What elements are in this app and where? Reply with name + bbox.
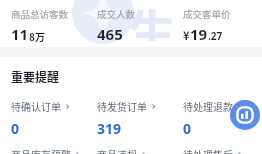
button[interactable]: 11 xyxy=(11,24,45,44)
button[interactable]: 319 xyxy=(97,119,122,138)
staticText: 8万 xyxy=(29,29,45,43)
staticText: .27 xyxy=(208,29,223,43)
button[interactable]: ¥ xyxy=(183,24,223,44)
button[interactable]: 待发货订单 xyxy=(97,99,157,113)
button[interactable]: 成交客单价 xyxy=(183,7,231,21)
staticText: 成交人数 xyxy=(97,7,136,21)
staticText: 成交客单价 xyxy=(183,7,231,21)
staticText: 生 xyxy=(128,0,177,41)
staticText: 319 xyxy=(97,119,122,138)
staticText: 待发货订单 xyxy=(97,99,147,113)
staticText: 商品总访客数 xyxy=(11,7,69,21)
staticText: 重要提醒 xyxy=(11,68,60,85)
staticText: 商品库存预警 xyxy=(11,147,71,154)
staticText: 待处理售后 xyxy=(183,147,233,154)
staticText: 待处理退款 xyxy=(183,99,233,113)
staticText: 0 xyxy=(183,119,192,138)
staticText: ¥ xyxy=(183,27,190,43)
button[interactable]: 商品违规 xyxy=(97,147,147,154)
staticText: 待确认订单 xyxy=(11,99,61,113)
staticText: 0 xyxy=(11,119,20,138)
button[interactable]: 0 xyxy=(183,119,192,138)
button[interactable]: 465 xyxy=(97,24,123,44)
button[interactable]: 商品库存预警 xyxy=(11,147,81,154)
staticText: 19 xyxy=(190,24,208,44)
staticText: 商品违规 xyxy=(97,147,137,154)
button[interactable]: 0 xyxy=(11,119,20,138)
button[interactable]: 待处理售后 xyxy=(183,147,243,154)
button[interactable]: 待处理退款 xyxy=(183,99,243,113)
staticText: 11 xyxy=(11,24,29,44)
button[interactable]: Data assistant xyxy=(230,100,260,130)
button[interactable]: 成交人数 xyxy=(97,7,136,21)
button[interactable]: 待确认订单 xyxy=(11,99,71,113)
button[interactable]: 商品总访客数 xyxy=(11,7,69,21)
